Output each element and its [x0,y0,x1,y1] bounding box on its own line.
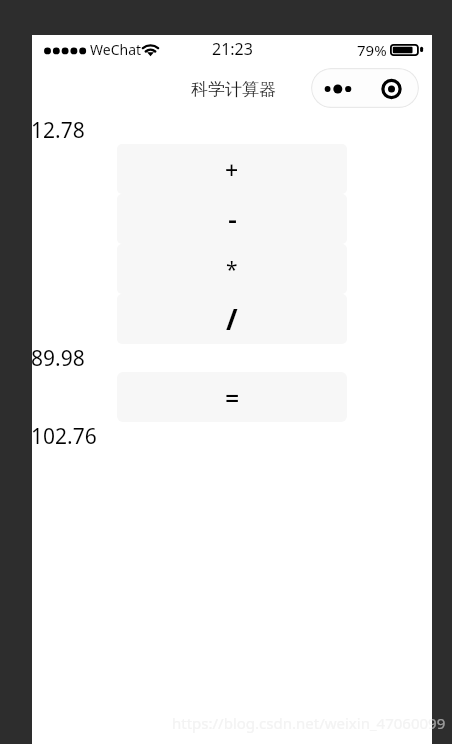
staticText: 12.78 [31,116,85,145]
staticText: = [225,380,240,414]
staticText: WeChat [90,40,142,59]
staticText: - [228,199,237,237]
staticText: / [226,300,238,338]
button[interactable]: * [117,244,347,294]
button[interactable]: More options [311,68,365,108]
button[interactable]: - [117,194,347,244]
button[interactable]: + [117,144,347,194]
staticText: 79% [357,40,387,60]
staticText: https://blog.csdn.net/weixin_47060099 [172,713,446,733]
button[interactable]: = [117,372,347,422]
staticText: 科学计算器 [191,79,276,100]
staticText: + [225,154,239,185]
staticText: * [226,255,238,284]
button[interactable]: Close mini program [365,68,419,108]
staticText: 89.98 [31,344,85,373]
staticText: 102.76 [31,422,97,451]
button[interactable]: / [117,294,347,344]
staticText: 21:23 [212,38,253,60]
